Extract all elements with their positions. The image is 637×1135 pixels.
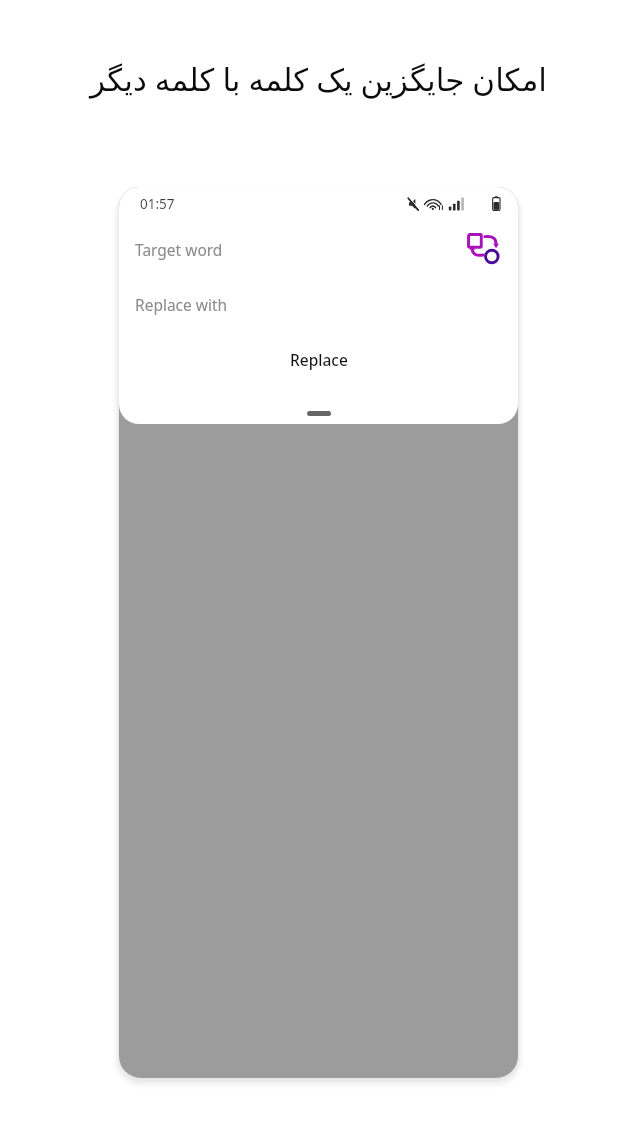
button[interactable]: Target word <box>135 221 462 277</box>
staticText: 01:57 <box>140 195 175 213</box>
staticText: Replace with <box>135 294 228 315</box>
button[interactable]: Swap words <box>462 227 506 271</box>
button[interactable]: Replace <box>272 339 366 380</box>
staticText: Target word <box>135 239 223 260</box>
button[interactable]: Replace with <box>119 277 518 331</box>
staticText: Replace <box>290 349 348 370</box>
staticText: امکان جایگزین یک کلمه با کلمه دیگر <box>0 58 637 100</box>
